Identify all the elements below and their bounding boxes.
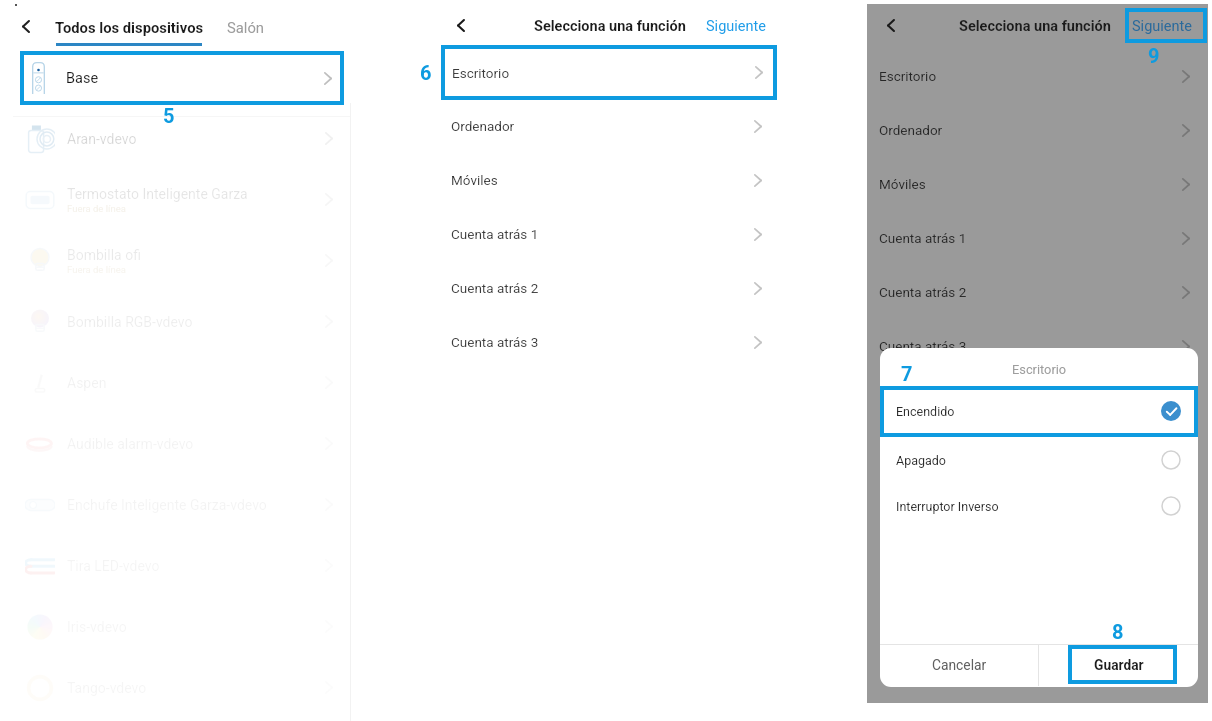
button[interactable]: Escritorio — [867, 49, 1208, 103]
button[interactable]: Siguiente — [1132, 18, 1192, 35]
button[interactable]: Cuenta atrás 1 — [867, 211, 1208, 265]
staticText: Tango-vdevo — [67, 680, 147, 696]
staticText: Audible alarm-vdevo — [67, 436, 194, 452]
staticText: Cancelar — [932, 657, 987, 673]
button[interactable]: Siguiente — [706, 18, 766, 35]
staticText: Guardar — [1094, 657, 1144, 673]
button[interactable]: Apagado — [880, 436, 1198, 484]
staticText: Aspen — [67, 375, 107, 391]
staticText: 5 — [163, 104, 175, 127]
staticText: Enchufe Inteligente Garza-vdevo — [67, 497, 267, 513]
staticText: 9 — [1148, 44, 1160, 67]
staticText: Siguiente — [1132, 18, 1192, 35]
button[interactable] — [880, 386, 1198, 437]
staticText: Interruptor Inverso — [896, 499, 999, 514]
staticText: 8 — [1112, 620, 1124, 643]
button[interactable]: Cancelar — [880, 644, 1038, 686]
button[interactable] — [1068, 645, 1177, 684]
button[interactable]: Cuenta atrás 3 — [404, 315, 808, 369]
staticText: Móviles — [451, 172, 498, 188]
button[interactable]: Salón — [227, 19, 265, 36]
staticText: Bombilla ofi — [67, 247, 141, 263]
staticText: Tira LED-vdevo — [67, 558, 160, 574]
button[interactable]: Todos los dispositivos — [55, 19, 204, 36]
button[interactable]: Base — [20, 51, 344, 105]
staticText: Escritorio — [1012, 362, 1067, 377]
staticText: Ordenador — [879, 122, 943, 138]
staticText: Selecciona una función — [534, 18, 686, 35]
staticText: Encendido — [896, 404, 955, 419]
button[interactable]: Back — [879, 13, 902, 37]
staticText: Aran-vdevo — [67, 131, 137, 147]
staticText: Base — [66, 70, 99, 87]
staticText: Escritorio — [879, 68, 937, 84]
button[interactable]: Cuenta atrás 2 — [867, 265, 1208, 319]
button[interactable]: Cuenta atrás 2 — [404, 261, 808, 315]
button[interactable]: Siguiente — [1125, 8, 1207, 43]
button[interactable]: Encendido — [880, 387, 1198, 435]
staticText: 6 — [420, 61, 432, 84]
staticText: Móviles — [879, 176, 926, 192]
staticText: Cuenta atrás 3 — [451, 334, 539, 350]
staticText: Cuenta atrás 1 — [879, 230, 967, 246]
staticText: Ordenador — [451, 118, 515, 134]
staticText: Selecciona una función — [959, 18, 1111, 35]
staticText: Todos los dispositivos — [55, 19, 204, 36]
button[interactable]: Back — [449, 13, 472, 37]
button[interactable]: Cuenta atrás 1 — [404, 207, 808, 261]
staticText: Bombilla RGB-vdevo — [67, 314, 193, 330]
button[interactable]: Termostato Inteligente Garza — [0, 169, 351, 230]
staticText: Fuera de línea — [67, 264, 126, 275]
button[interactable]: Back — [14, 14, 37, 38]
staticText: Escritorio — [452, 65, 510, 81]
staticText: Siguiente — [706, 18, 766, 35]
staticText: Cuenta atrás 1 — [451, 226, 539, 242]
staticText: Cuenta atrás 3 — [879, 338, 967, 354]
staticText: Cuenta atrás 2 — [879, 284, 967, 300]
button[interactable]: Aran-vdevo — [0, 108, 351, 169]
staticText: Fuera de línea — [67, 203, 126, 214]
staticText: Cuenta atrás 2 — [451, 280, 539, 296]
button[interactable]: Escritorio — [441, 45, 777, 100]
button[interactable]: Guardar — [1039, 644, 1198, 686]
button[interactable]: Ordenador — [404, 99, 808, 153]
button[interactable]: Móviles — [404, 153, 808, 207]
staticText: Salón — [227, 19, 265, 36]
staticText: Apagado — [896, 453, 946, 468]
staticText: Termostato Inteligente Garza — [67, 186, 248, 202]
button[interactable]: Cuenta atrás 3 — [867, 319, 1208, 373]
button[interactable]: Móviles — [867, 157, 1208, 211]
button[interactable]: Ordenador — [867, 103, 1208, 157]
button[interactable]: Interruptor Inverso — [880, 482, 1198, 530]
staticText: 7 — [901, 362, 913, 385]
